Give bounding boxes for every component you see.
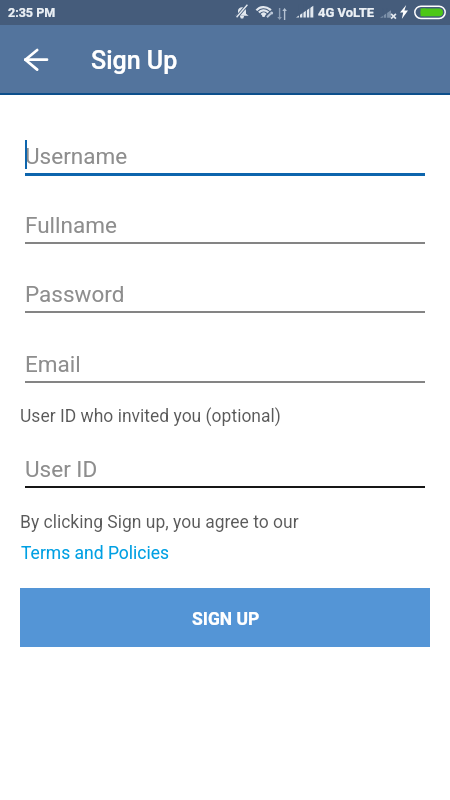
staticText: Email: [25, 351, 81, 377]
staticText: User ID: [25, 456, 98, 482]
staticText: User ID who invited you (optional): [20, 406, 281, 427]
staticText: Password: [25, 281, 125, 307]
button[interactable]: [25, 207, 425, 243]
staticText: 2:35 PM: [8, 5, 56, 20]
button[interactable]: [25, 346, 425, 382]
button[interactable]: Terms and Policies: [21, 543, 170, 564]
staticText: Fullname: [25, 212, 117, 238]
staticText: By clicking Sign up, you agree to our: [20, 512, 299, 533]
staticText: 4G VoLTE: [318, 5, 375, 20]
button[interactable]: [25, 276, 425, 312]
button[interactable]: [25, 138, 425, 174]
staticText: Sign Up: [91, 46, 178, 75]
staticText: SIGN UP: [192, 609, 260, 630]
button[interactable]: [25, 451, 425, 487]
button[interactable]: SIGN UP: [20, 588, 430, 647]
staticText: Username: [25, 143, 128, 169]
button[interactable]: Back: [12, 35, 60, 83]
